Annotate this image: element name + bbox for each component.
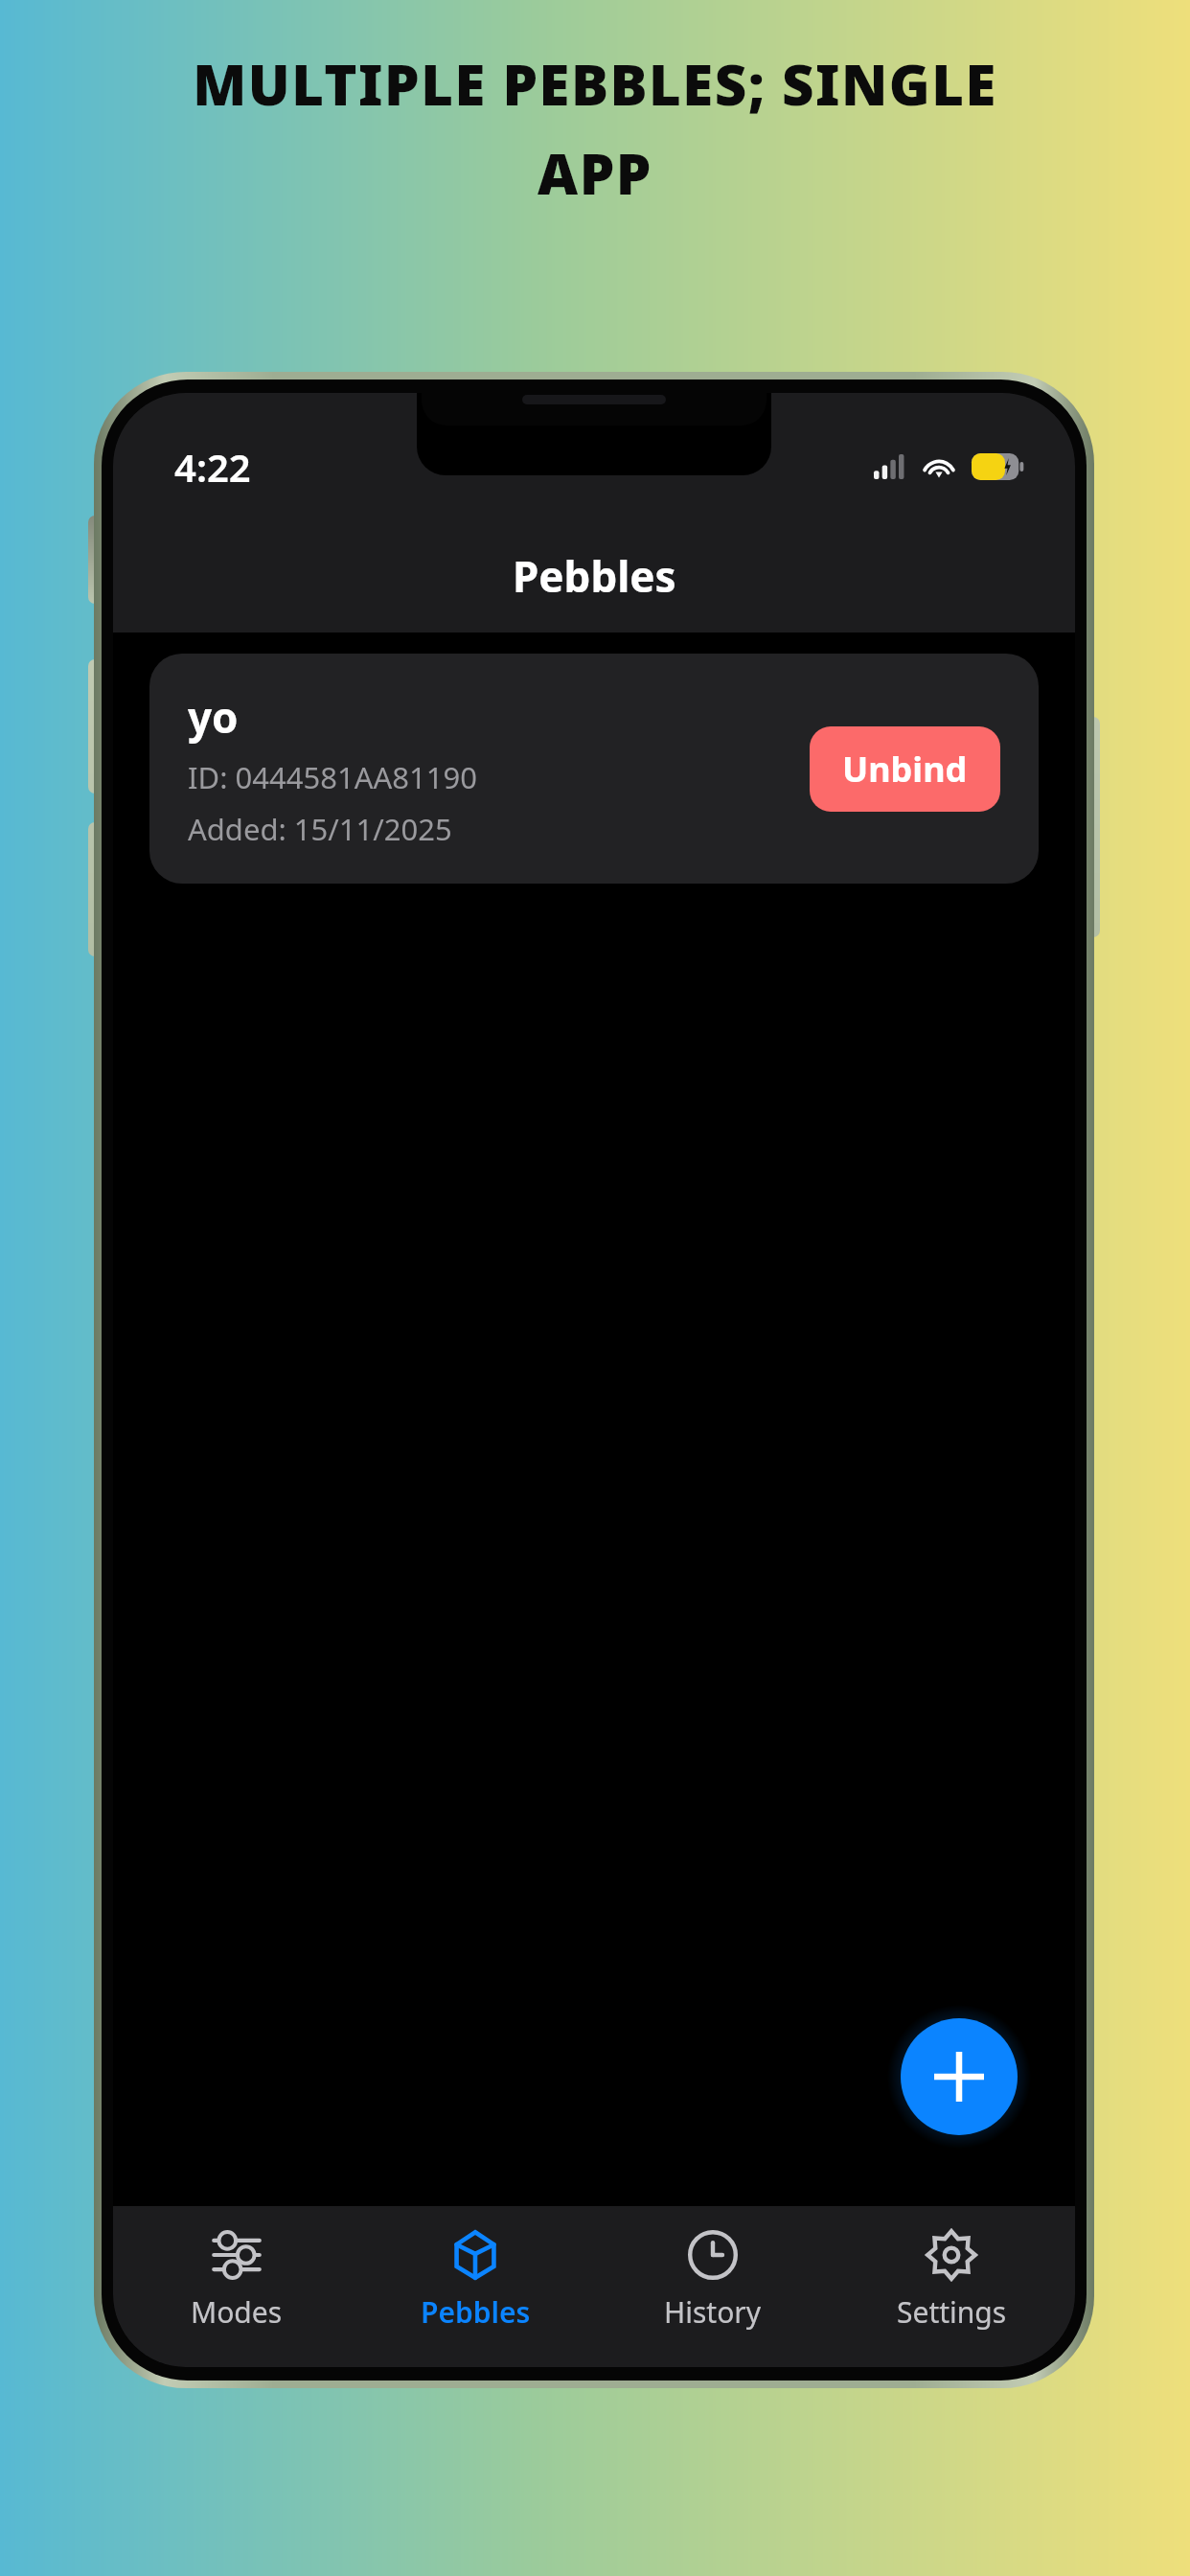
button[interactable]: yo	[149, 654, 1039, 884]
staticText: Modes	[191, 2292, 283, 2332]
staticText: yo	[188, 688, 239, 746]
button[interactable]: Add pebble	[901, 2018, 1018, 2135]
staticText: APP	[538, 135, 652, 211]
staticText: Pebbles	[421, 2292, 531, 2332]
button[interactable]: Pebbles	[360, 2206, 590, 2367]
button[interactable]: Modes	[122, 2206, 352, 2367]
staticText: ID: 0444581AA81190	[188, 757, 477, 797]
button[interactable]: Unbind	[810, 726, 1000, 812]
staticText: Settings	[897, 2292, 1007, 2332]
staticText: Added: 15/11/2025	[188, 809, 452, 849]
button[interactable]: History	[598, 2206, 828, 2367]
staticText: MULTIPLE PEBBLES; SINGLE	[193, 46, 997, 122]
button[interactable]: Settings	[836, 2206, 1066, 2367]
staticText: Pebbles	[513, 547, 676, 605]
staticText: History	[664, 2292, 762, 2332]
staticText: Unbind	[842, 746, 968, 793]
staticText: 4:22	[174, 441, 251, 493]
